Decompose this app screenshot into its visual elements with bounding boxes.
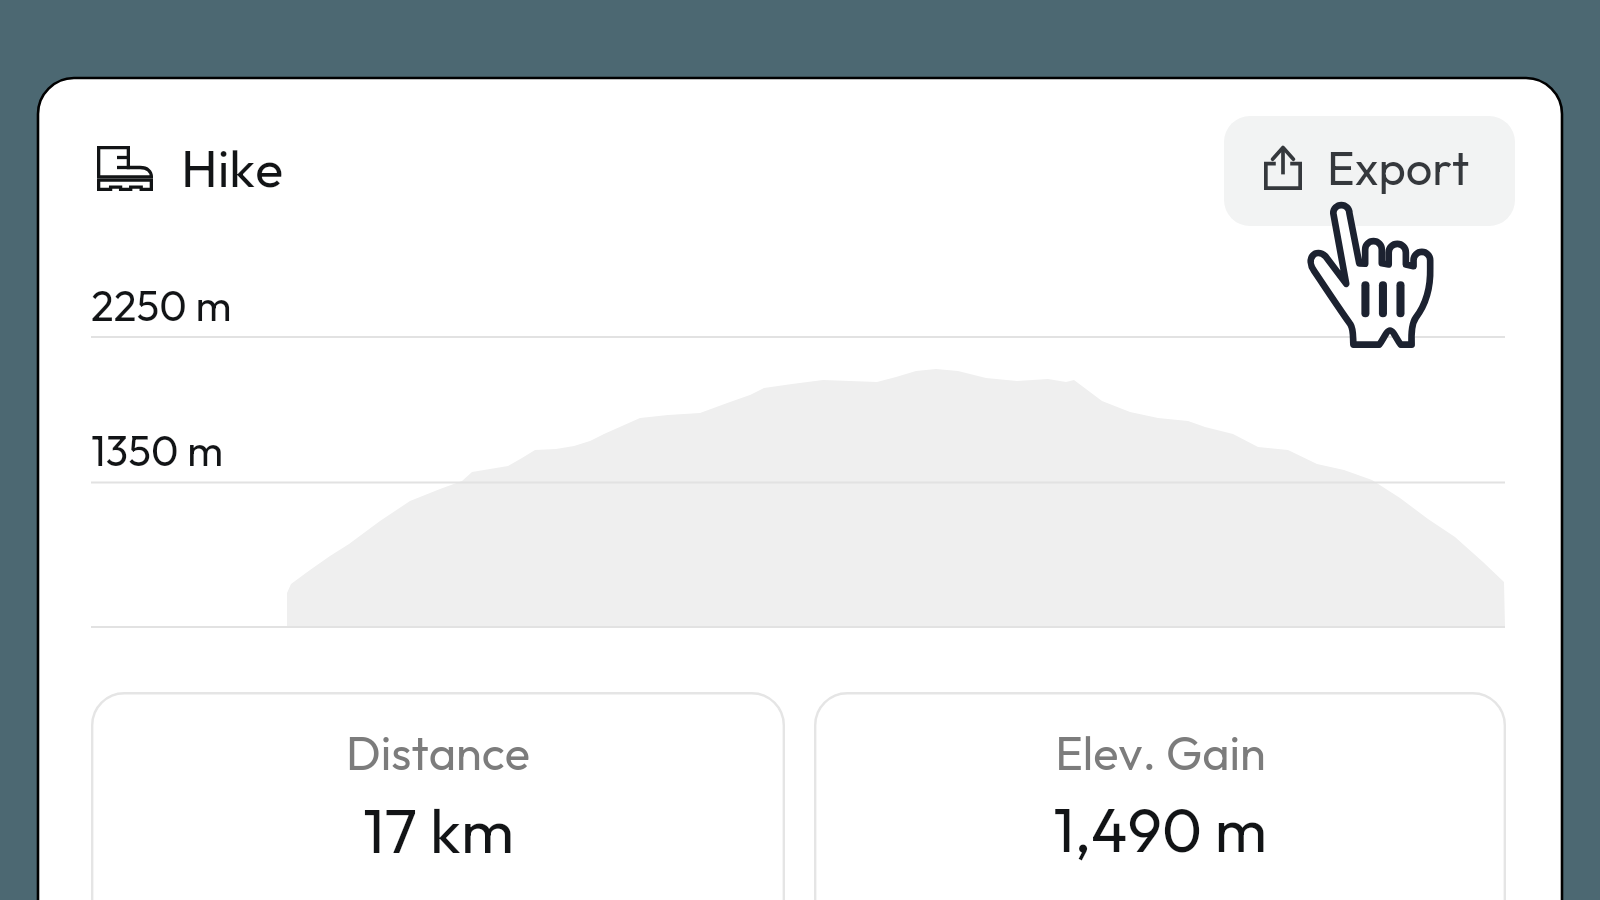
staticText: Export: [1327, 138, 1470, 197]
button[interactable]: Elev. Gain: [814, 692, 1506, 900]
staticText: 1350 m: [91, 424, 224, 477]
button[interactable]: Distance: [91, 692, 785, 900]
staticText: 1,490 m: [1053, 791, 1267, 868]
other: Hiking: [97, 146, 153, 191]
button[interactable]: [1224, 116, 1515, 226]
staticText: 17 km: [363, 791, 514, 869]
other: Pointer: [1305, 202, 1433, 348]
staticText: Distance: [346, 723, 530, 782]
staticText: 2250 m: [91, 279, 232, 332]
staticText: Elev. Gain: [1055, 723, 1266, 782]
staticText: Hike: [181, 135, 284, 201]
